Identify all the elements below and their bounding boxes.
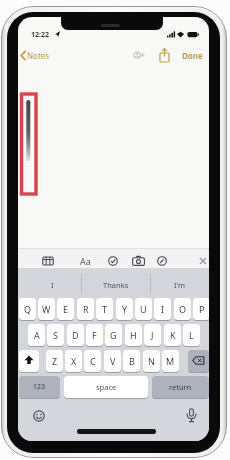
staticText: G <box>110 329 117 341</box>
staticText: U <box>140 303 147 315</box>
staticText: Aa <box>80 255 91 267</box>
button[interactable]: Q <box>19 298 36 320</box>
button[interactable] <box>188 350 209 372</box>
button[interactable]: I <box>154 298 171 320</box>
button[interactable]: P <box>193 298 209 320</box>
staticText: H <box>130 329 137 341</box>
button[interactable] <box>132 256 145 266</box>
button[interactable]: K <box>164 324 181 346</box>
button[interactable]: U <box>135 298 152 320</box>
staticText: Y <box>122 303 128 315</box>
staticText: return <box>169 382 192 392</box>
button[interactable] <box>132 50 146 62</box>
staticText: Done <box>182 50 203 61</box>
button[interactable]: J <box>144 324 161 346</box>
button[interactable] <box>157 256 167 266</box>
staticText: T <box>102 303 108 315</box>
button[interactable] <box>32 409 46 423</box>
staticText: J <box>151 329 154 341</box>
button[interactable] <box>42 256 54 266</box>
button[interactable]: S <box>47 324 64 346</box>
button[interactable]: G <box>105 324 122 346</box>
button[interactable]: space <box>64 376 148 398</box>
staticText: space <box>96 382 117 392</box>
button[interactable]: 123 <box>19 376 60 398</box>
staticText: F <box>92 329 97 341</box>
button[interactable] <box>185 408 198 424</box>
staticText: E <box>63 303 69 315</box>
button[interactable]: Done <box>178 50 206 61</box>
staticText: L <box>189 329 194 341</box>
button[interactable]: V <box>104 350 121 372</box>
button[interactable]: Aa <box>77 254 93 267</box>
staticText: Notes <box>27 50 50 61</box>
button[interactable]: R <box>77 298 94 320</box>
button[interactable]: T <box>96 298 113 320</box>
button[interactable]: B <box>123 350 140 372</box>
staticText: I'm <box>174 280 186 290</box>
button[interactable]: W <box>38 298 55 320</box>
staticText: Thanks <box>103 280 129 290</box>
button[interactable] <box>108 256 118 266</box>
staticText: B <box>129 355 135 367</box>
button[interactable] <box>199 257 207 265</box>
button[interactable]: Z <box>46 350 63 372</box>
staticText: P <box>199 303 205 315</box>
button[interactable]: E <box>57 298 74 320</box>
button[interactable] <box>19 350 39 372</box>
button[interactable] <box>159 48 170 63</box>
staticText: 123 <box>33 382 46 392</box>
staticText: 12:22 <box>31 30 49 40</box>
button[interactable]: N <box>143 350 160 372</box>
button[interactable]: Notes <box>26 50 51 61</box>
button[interactable]: C <box>84 350 101 372</box>
staticText: N <box>148 355 155 367</box>
staticText: R <box>83 303 89 315</box>
button[interactable]: A <box>28 324 45 346</box>
button[interactable]: F <box>86 324 103 346</box>
staticText: Z <box>52 355 58 367</box>
button[interactable]: return <box>152 376 209 398</box>
button[interactable]: I <box>32 279 72 291</box>
staticText: X <box>71 355 77 367</box>
staticText: I <box>51 280 54 290</box>
button[interactable]: X <box>65 350 82 372</box>
staticText: K <box>170 329 176 341</box>
staticText: Q <box>24 303 32 315</box>
staticText: V <box>110 355 116 367</box>
button[interactable]: O <box>174 298 191 320</box>
button[interactable]: D <box>67 324 84 346</box>
staticText: D <box>72 329 79 341</box>
staticText: A <box>34 329 40 341</box>
staticText: C <box>90 355 96 367</box>
button[interactable]: H <box>125 324 142 346</box>
button[interactable]: Y <box>116 298 133 320</box>
button[interactable]: Thanks <box>96 279 136 291</box>
staticText: W <box>42 303 51 315</box>
staticText: M <box>166 355 175 367</box>
button[interactable]: I'm <box>160 279 200 291</box>
staticText: O <box>179 303 187 315</box>
staticText: S <box>53 329 58 341</box>
button[interactable]: M <box>162 350 179 372</box>
staticText: I <box>161 303 165 315</box>
button[interactable]: L <box>183 324 200 346</box>
